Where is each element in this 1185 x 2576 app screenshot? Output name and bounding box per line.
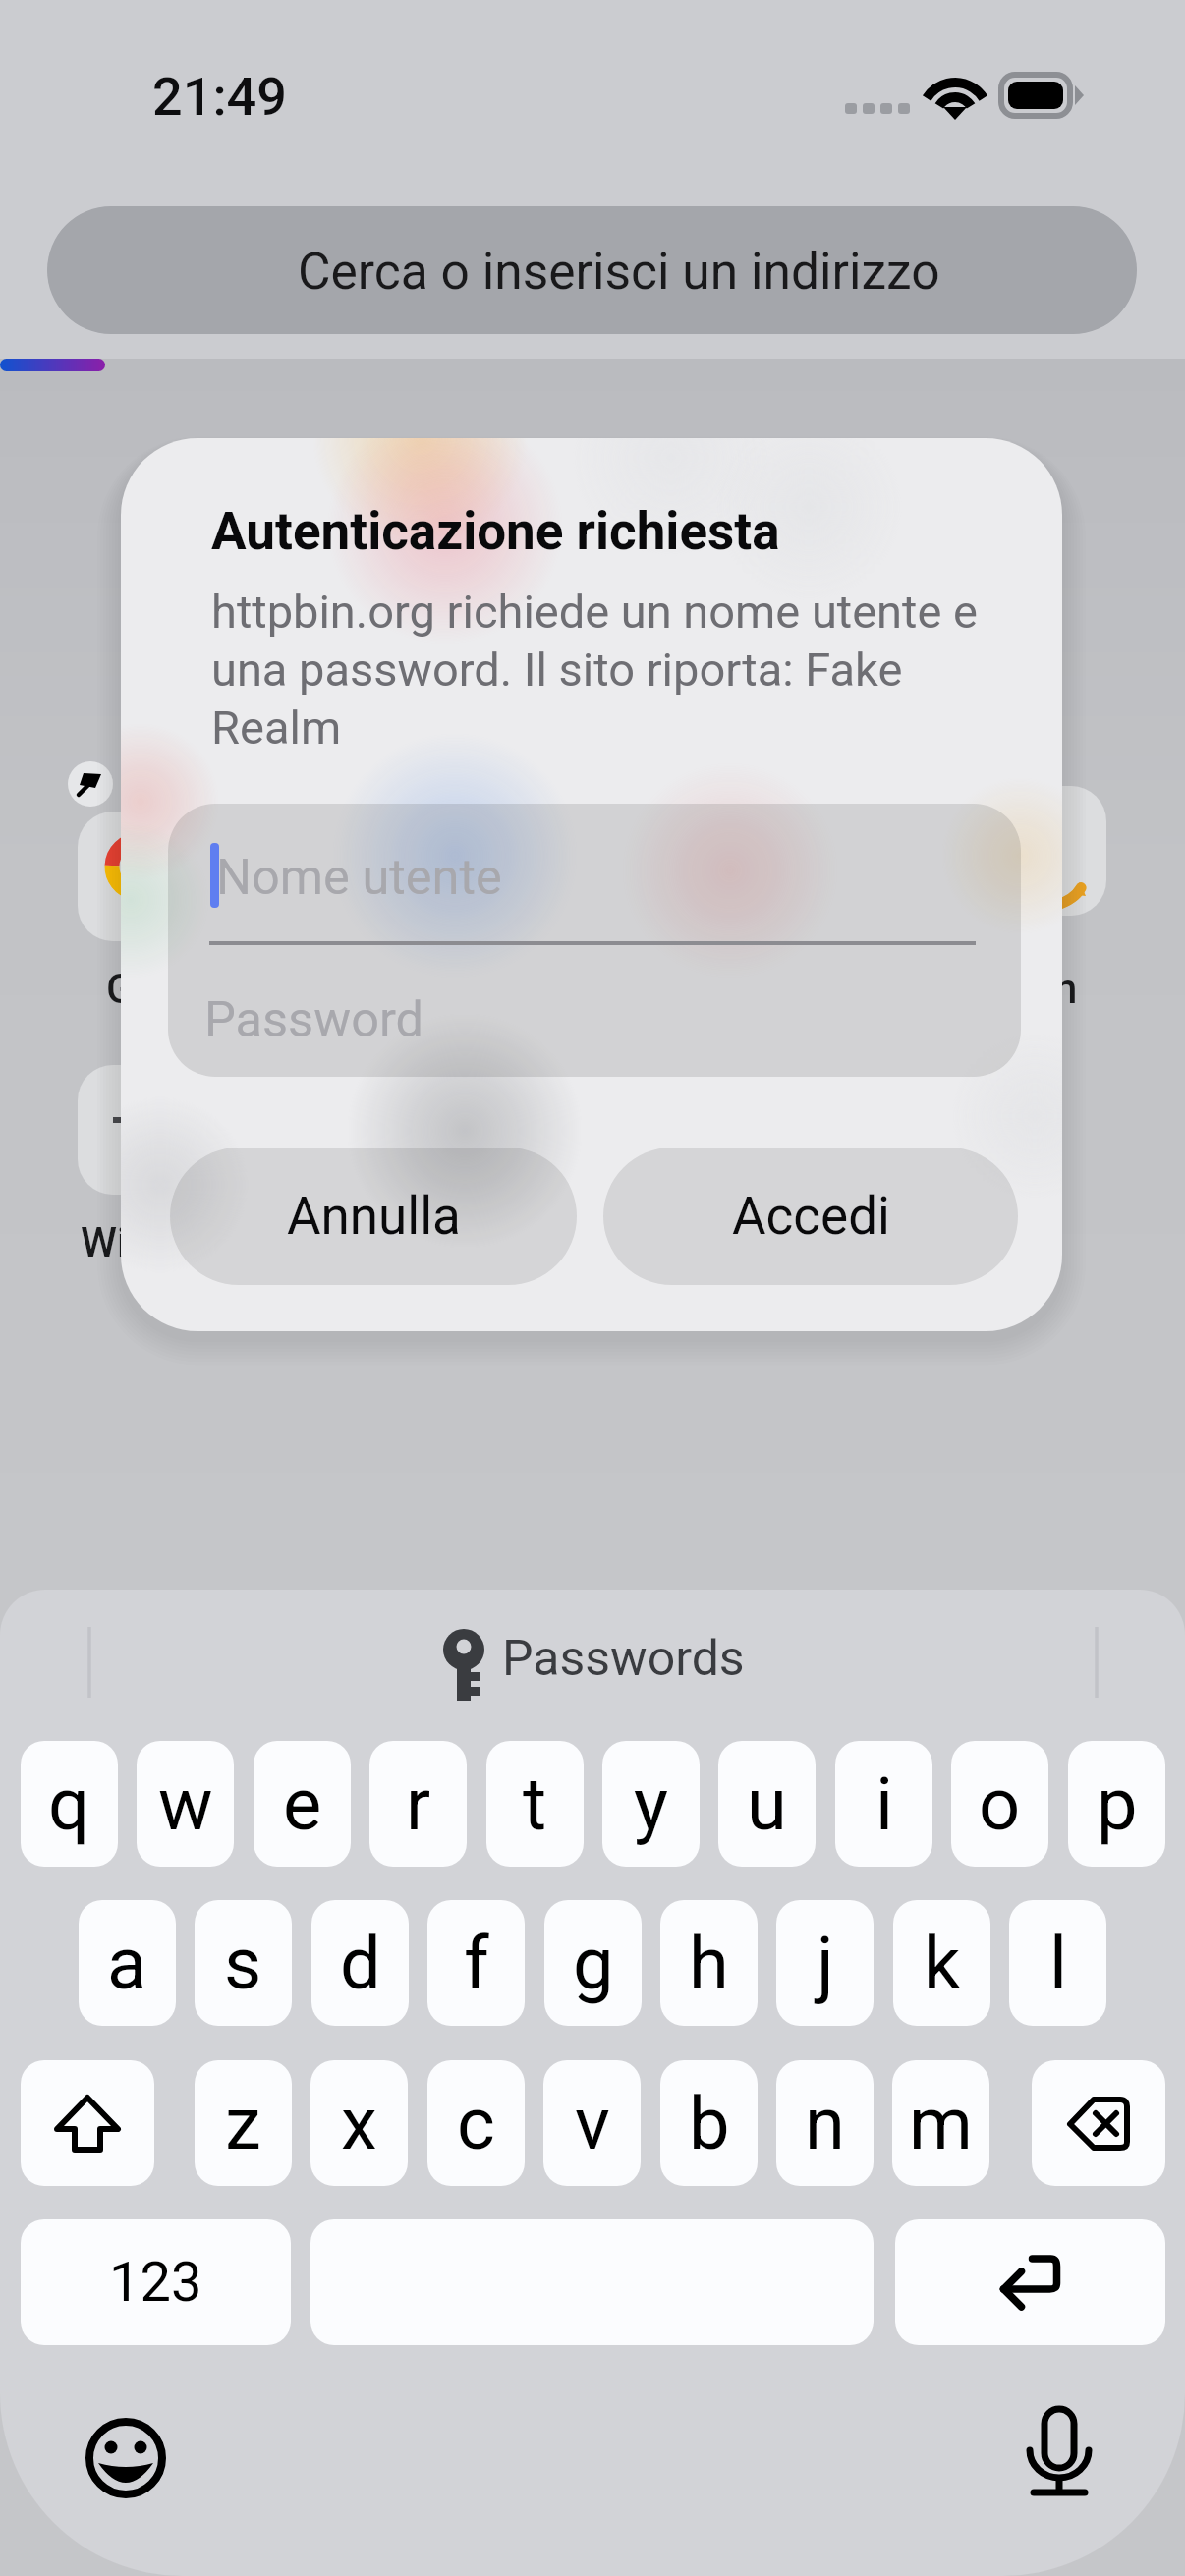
staticText: e (283, 1762, 322, 1847)
staticText: q (48, 1762, 90, 1847)
button[interactable]: l (1009, 1900, 1106, 2026)
button[interactable]: r (369, 1741, 467, 1867)
button[interactable]: d (311, 1900, 409, 2026)
button[interactable]: Emoji (85, 2418, 166, 2498)
staticText: n (1054, 965, 1078, 1013)
button[interactable]: u (718, 1741, 816, 1867)
staticText: 21:49 (152, 66, 288, 128)
button[interactable]: j (776, 1900, 874, 2026)
button[interactable]: Wikipedia (78, 1065, 216, 1195)
staticText: k (924, 1921, 961, 2006)
button[interactable]: c (427, 2060, 525, 2186)
button[interactable]: s (195, 1900, 292, 2026)
staticText: s (224, 1921, 262, 2006)
button[interactable]: z (195, 2060, 292, 2186)
staticText: z (225, 2081, 261, 2166)
button[interactable]: h (660, 1900, 758, 2026)
button[interactable]: Backspace (1032, 2060, 1165, 2186)
staticText: Cerca o inserisci un indirizzo (298, 242, 940, 301)
staticText: G (106, 965, 135, 1013)
staticText: 123 (109, 2250, 202, 2315)
staticText: c (457, 2081, 495, 2166)
staticText: Autenticazione richiesta (211, 501, 780, 562)
button[interactable]: Space (310, 2219, 874, 2345)
button[interactable]: x (310, 2060, 408, 2186)
staticText: Accedi (732, 1186, 890, 1247)
staticText: t (523, 1762, 547, 1847)
button[interactable]: Voice input (1019, 2405, 1100, 2503)
button[interactable]: n (776, 2060, 874, 2186)
staticText: Nome utente (216, 848, 502, 906)
staticText: f (464, 1921, 489, 2006)
staticText: w (158, 1762, 213, 1847)
staticText: i (875, 1762, 893, 1847)
button[interactable]: Cerca o inserisci un indirizzo (47, 206, 1137, 334)
button[interactable]: b (660, 2060, 758, 2186)
staticText: r (406, 1762, 431, 1847)
button[interactable]: Amazon (968, 786, 1106, 916)
button[interactable]: y (602, 1741, 700, 1867)
staticText: v (575, 2081, 610, 2166)
button[interactable]: t (486, 1741, 584, 1867)
staticText: g (573, 1921, 614, 2006)
staticText: x (341, 2081, 377, 2166)
staticText: l (1049, 1921, 1067, 2006)
staticText: Wi (81, 1218, 128, 1266)
button[interactable]: Return (895, 2219, 1165, 2345)
staticText: b (689, 2081, 730, 2166)
button[interactable]: i (835, 1741, 932, 1867)
button[interactable]: a (79, 1900, 176, 2026)
staticText: Passwords (502, 1630, 745, 1688)
button[interactable]: o (951, 1741, 1048, 1867)
staticText: httpbin.org richiede un nome utente e un… (211, 585, 997, 755)
staticText: j (817, 1921, 834, 2006)
button[interactable]: 123 (21, 2219, 291, 2345)
staticText: Password (204, 990, 424, 1048)
staticText: Annulla (287, 1186, 461, 1247)
staticText: m (909, 2081, 973, 2166)
button[interactable]: Shift (21, 2060, 154, 2186)
staticText: d (340, 1921, 381, 2006)
staticText: u (747, 1762, 787, 1847)
button[interactable]: v (543, 2060, 641, 2186)
button[interactable]: Accedi (603, 1148, 1018, 1285)
button[interactable]: m (892, 2060, 989, 2186)
button[interactable]: Google (78, 812, 216, 941)
staticText: a (107, 1921, 147, 2006)
button[interactable]: q (21, 1741, 118, 1867)
button[interactable]: w (137, 1741, 234, 1867)
button[interactable]: Passwords (430, 1617, 745, 1708)
button[interactable]: Annulla (170, 1148, 577, 1285)
staticText: y (634, 1762, 669, 1847)
button[interactable]: f (427, 1900, 525, 2026)
staticText: o (979, 1762, 1021, 1847)
staticText: n (805, 2081, 845, 2166)
button[interactable]: g (544, 1900, 642, 2026)
staticText: p (1097, 1762, 1138, 1847)
button[interactable]: Pinned (68, 761, 113, 807)
button[interactable]: p (1068, 1741, 1165, 1867)
button[interactable]: k (893, 1900, 990, 2026)
staticText: h (689, 1921, 729, 2006)
button[interactable]: e (254, 1741, 351, 1867)
